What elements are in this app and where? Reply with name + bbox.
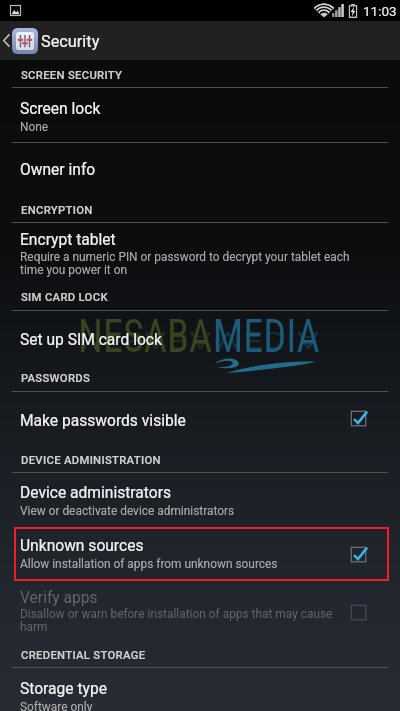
staticText: Device administrators (20, 484, 171, 502)
button[interactable]: Checked (344, 404, 374, 434)
staticText: Unknown sources (20, 537, 144, 555)
button[interactable]: Unknown sources (0, 528, 400, 582)
staticText: SCREEN SECURITY (21, 69, 123, 82)
staticText: Storage type (20, 680, 107, 698)
staticText: Disallow or warn before installation of … (20, 607, 333, 634)
button[interactable]: Owner info (0, 142, 400, 189)
staticText: Set up SIM card lock (20, 331, 162, 349)
staticText: NESABA (78, 326, 213, 353)
staticText: Encrypt tablet (20, 231, 116, 249)
staticText: MEDIA (213, 326, 320, 353)
staticText: DEVICE ADMINISTRATION (21, 454, 161, 467)
staticText: 11:03 (363, 3, 397, 19)
staticText: ENCRYPTION (21, 204, 93, 217)
staticText: Software only (20, 700, 93, 711)
button[interactable]: Set up SIM card lock (0, 310, 400, 357)
staticText: Screen lock (20, 100, 101, 118)
staticText: PASSWORDS (21, 372, 91, 385)
button[interactable]: Checked (344, 540, 374, 570)
button[interactable]: Navigate up (0, 21, 400, 60)
staticText: Make passwords visible (20, 412, 186, 430)
staticText: Require a numeric PIN or password to dec… (20, 250, 350, 277)
staticText: View or deactivate device administrators (20, 504, 235, 518)
staticText: CREDENTIAL STORAGE (21, 649, 146, 662)
button[interactable]: Make passwords visible (0, 391, 400, 438)
staticText: Allow installation of apps from unknown … (20, 557, 278, 571)
staticText: MEDIA (213, 309, 320, 363)
button[interactable]: Verify apps (0, 582, 400, 642)
staticText: Owner info (20, 161, 96, 179)
staticText: NESABA (78, 309, 213, 363)
button[interactable]: Encrypt tablet (0, 222, 400, 281)
button[interactable]: Storage type (0, 667, 400, 711)
button[interactable]: Unchecked (344, 598, 374, 628)
staticText: Verify apps (20, 589, 98, 607)
button[interactable]: Screen lock (0, 87, 400, 142)
staticText: Security (41, 32, 100, 51)
button[interactable]: Device administrators (0, 472, 400, 528)
staticText: SIM CARD LOCK (21, 291, 108, 304)
staticText: None (20, 120, 49, 134)
